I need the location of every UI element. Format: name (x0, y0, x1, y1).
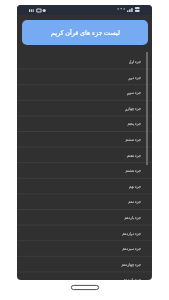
button[interactable]: لیست جزء های قرآن کریم (22, 20, 148, 45)
button[interactable]: جزء هفتم (17, 147, 152, 163)
button[interactable]: جزء چهارم (17, 100, 152, 116)
staticText: جزء هشتم (125, 168, 141, 173)
button[interactable]: جزء سوم (17, 84, 152, 100)
staticText: جزء یازدهم (124, 215, 141, 220)
button[interactable]: جزء دوازدهم (17, 225, 152, 241)
button[interactable]: جزء دهم (17, 193, 152, 209)
staticText: جزء چهاردهم (121, 262, 141, 267)
staticText: جزء پنجم (127, 121, 141, 126)
button[interactable]: جزء سیزدهم (17, 240, 152, 256)
button[interactable]: جزء پنجم (17, 115, 152, 131)
staticText: جزء نهم (129, 184, 141, 189)
staticText: جزء پانزدهم (123, 277, 141, 280)
button[interactable]: جزء نهم (17, 178, 152, 194)
staticText: جزء چهارم (125, 106, 141, 111)
other: Home (71, 285, 99, 290)
staticText: جزء ششم (125, 137, 141, 142)
staticText: جزء هفتم (126, 153, 141, 158)
button[interactable]: جزء هشتم (17, 162, 152, 178)
staticText: جزء اول (128, 59, 141, 64)
staticText: جزء سوم (127, 90, 141, 95)
button[interactable]: جزء اول (17, 53, 152, 69)
button[interactable]: جزء دوم (17, 69, 152, 85)
button[interactable]: جزء چهاردهم (17, 256, 152, 272)
button[interactable]: جزء ششم (17, 131, 152, 147)
staticText: جزء سیزدهم (122, 246, 141, 251)
button[interactable]: جزء یازدهم (17, 209, 152, 225)
button[interactable]: جزء پانزدهم (17, 271, 152, 280)
staticText: لیست جزء های قرآن کریم (51, 28, 120, 37)
staticText: جزء دوازدهم (122, 231, 141, 236)
staticText: جزء دوم (128, 75, 141, 80)
staticText: جزء دهم (128, 199, 141, 204)
